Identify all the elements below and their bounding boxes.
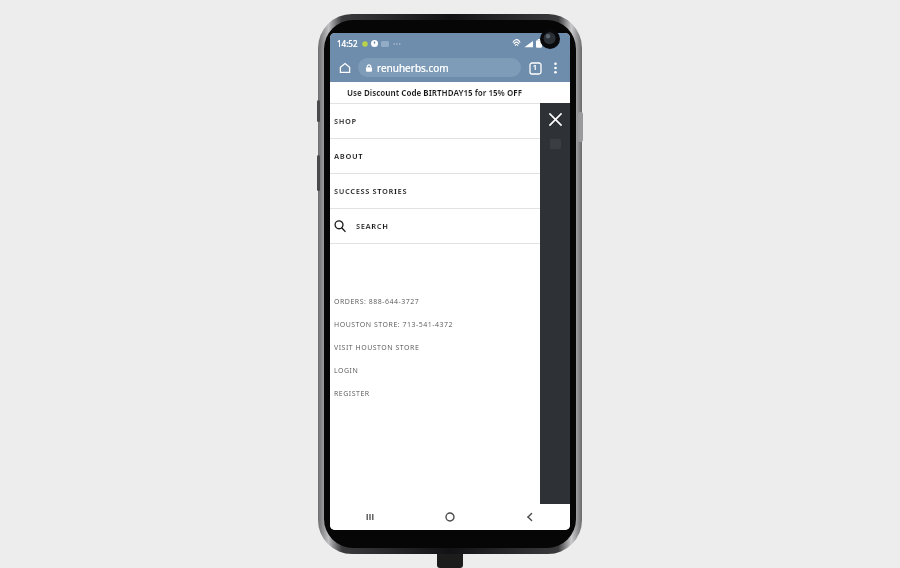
button[interactable]: renuherbs.com xyxy=(358,58,521,77)
button[interactable]: ORDERS: 888-644-3727 xyxy=(330,290,540,313)
button[interactable]: Recent apps xyxy=(330,504,410,530)
staticText: Use Discount Code BIRTHDAY15 for 15% OFF xyxy=(347,87,523,98)
staticText: renuherbs.com xyxy=(377,61,449,75)
button[interactable]: ABOUT xyxy=(330,139,540,173)
button[interactable]: SEARCH xyxy=(330,209,540,243)
button[interactable]: SUCCESS STORIES xyxy=(330,174,540,208)
button[interactable]: LOGIN xyxy=(330,359,540,382)
button[interactable]: Close menu xyxy=(543,107,567,131)
button[interactable]: Home xyxy=(336,59,354,77)
button[interactable]: Use Discount Code BIRTHDAY15 for 15% OFF xyxy=(330,82,540,103)
staticText: 14:52 xyxy=(337,38,358,49)
staticText: Get compliments on how slim xyxy=(358,410,542,428)
staticText: HOUSTON STORE: 713-541-4372 xyxy=(334,320,454,330)
staticText: and results that thousands are xyxy=(356,476,544,494)
staticText: VISIT HOUSTON STORE xyxy=(334,343,420,353)
button[interactable]: Home xyxy=(410,504,490,530)
staticText: and good you look, and how full xyxy=(351,432,550,450)
staticText: SEARCH xyxy=(356,221,389,231)
button[interactable]: Back xyxy=(490,504,570,530)
button[interactable]: SHOP xyxy=(330,104,540,138)
button[interactable]: More options xyxy=(546,59,564,77)
staticText: ORDERS: 888-644-3727 xyxy=(334,297,420,307)
staticText: SUCCESS STORIES xyxy=(334,186,408,196)
button[interactable]: REGISTER xyxy=(330,382,540,405)
button[interactable]: VISIT HOUSTON STORE xyxy=(330,336,540,359)
staticText: SHOP xyxy=(334,116,357,126)
staticText: ABOUT xyxy=(334,151,364,161)
staticText: of life you are! Enjoy the benefits xyxy=(348,454,553,472)
button[interactable]: Tabs xyxy=(526,59,544,77)
button[interactable]: HOUSTON STORE: 713-541-4372 xyxy=(330,313,540,336)
staticText: LOGIN xyxy=(334,366,359,376)
staticText: 1 xyxy=(533,63,538,73)
staticText: REGISTER xyxy=(334,389,370,399)
